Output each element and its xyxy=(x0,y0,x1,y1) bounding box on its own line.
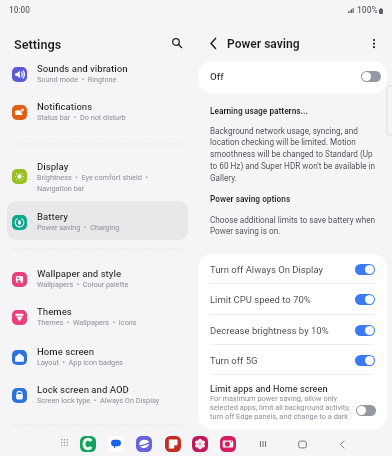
staticText: Turn off Always On Display xyxy=(210,264,323,275)
button[interactable]: Notifications xyxy=(7,91,188,130)
button[interactable]: Limit CPU speed to 70% xyxy=(198,284,387,314)
staticText: 10:00 xyxy=(9,5,30,15)
button[interactable]: CAMERA xyxy=(220,436,236,452)
button[interactable]: More options xyxy=(361,31,386,56)
button[interactable]: Search xyxy=(165,31,189,55)
staticText: 100% xyxy=(357,5,378,15)
button[interactable]: Wallpaper and style xyxy=(7,258,188,297)
button[interactable]: Recents xyxy=(253,434,273,454)
staticText: Notifications xyxy=(37,101,93,112)
staticText: Limit apps and Home screen xyxy=(210,383,328,394)
button[interactable]: Off xyxy=(198,61,387,93)
staticText: Wallpaper and style xyxy=(37,268,122,279)
button[interactable]: BROWSER xyxy=(136,436,152,452)
staticText: Turn off 5G xyxy=(210,355,258,366)
staticText: Lock screen and AOD xyxy=(37,384,129,395)
button[interactable]: All apps xyxy=(56,434,73,451)
button[interactable]: Sounds and vibration xyxy=(7,53,188,92)
staticText: Themes xyxy=(37,306,72,317)
button[interactable]: On xyxy=(355,294,375,305)
staticText: Status bar • Do not disturb xyxy=(37,113,126,122)
staticText: Power saving xyxy=(227,37,300,51)
button[interactable]: PHONE xyxy=(80,436,96,452)
staticText: Layout • App icon badges xyxy=(37,358,123,367)
button[interactable]: Decrease brightness by 10% xyxy=(198,315,387,345)
button[interactable]: On xyxy=(355,325,375,336)
button[interactable]: Back xyxy=(201,31,226,56)
staticText: Decrease brightness by 10% xyxy=(210,325,329,336)
staticText: Home screen xyxy=(37,346,95,357)
button[interactable]: STORE xyxy=(165,436,181,452)
button[interactable]: MSG xyxy=(108,436,124,452)
button[interactable]: On xyxy=(355,264,375,275)
staticText: Themes • Wallpapers • Icons xyxy=(37,318,137,327)
staticText: For maximum power saving, allow only sel… xyxy=(210,394,355,421)
staticText: Learning usage patterns... xyxy=(210,106,308,116)
staticText: Power saving • Charging xyxy=(37,223,120,232)
button[interactable]: Turn off Always On Display xyxy=(198,254,387,284)
button[interactable]: Battery xyxy=(7,201,188,240)
button[interactable]: Lock screen and AOD xyxy=(7,374,188,413)
button[interactable]: Display xyxy=(7,151,188,199)
button[interactable]: On xyxy=(355,355,375,366)
staticText: Settings xyxy=(14,37,62,52)
button[interactable]: GALAXY xyxy=(192,436,208,452)
staticText: Power saving options xyxy=(210,194,291,204)
staticText: Limit CPU speed to 70% xyxy=(210,294,311,305)
button[interactable]: Off xyxy=(356,405,376,416)
button[interactable]: Back xyxy=(332,434,352,454)
staticText: Display xyxy=(37,161,69,172)
staticText: Choose additional limits to save battery… xyxy=(210,215,378,236)
staticText: Screen lock type • Always On Display xyxy=(37,396,160,405)
button[interactable]: Turn off 5G xyxy=(198,345,387,375)
staticText: Wallpapers • Colour palette xyxy=(37,280,129,289)
staticText: Sounds and vibration xyxy=(37,63,128,74)
button[interactable]: Home screen xyxy=(7,336,188,375)
button[interactable]: Home xyxy=(292,434,312,454)
staticText: Brightness • Eye comfort shield • Naviga… xyxy=(37,173,148,193)
staticText: Off xyxy=(210,71,224,82)
button[interactable]: Off xyxy=(361,71,381,82)
staticText: Sound mode • Ringtone xyxy=(37,75,117,84)
staticText: Battery xyxy=(37,211,68,222)
button[interactable]: Themes xyxy=(7,296,188,335)
staticText: Background network usage, syncing, and l… xyxy=(210,126,378,183)
